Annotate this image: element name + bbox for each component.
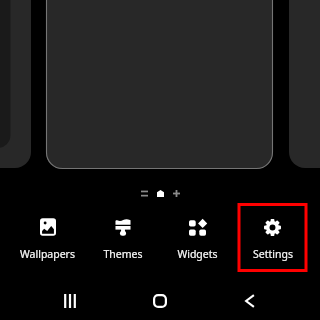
staticText: Settings bbox=[253, 247, 293, 261]
button[interactable]: Recents bbox=[25, 281, 115, 320]
button[interactable]: Back bbox=[205, 281, 295, 320]
staticText: Wallpapers bbox=[20, 247, 75, 261]
staticText: Widgets bbox=[177, 247, 218, 261]
staticText: Themes bbox=[103, 247, 143, 261]
button[interactable]: Widgets bbox=[160, 205, 235, 271]
button[interactable]: Themes bbox=[85, 205, 160, 271]
button[interactable]: Wallpapers bbox=[10, 205, 85, 271]
button[interactable]: Home bbox=[115, 281, 205, 320]
button[interactable]: Settings bbox=[235, 205, 310, 271]
